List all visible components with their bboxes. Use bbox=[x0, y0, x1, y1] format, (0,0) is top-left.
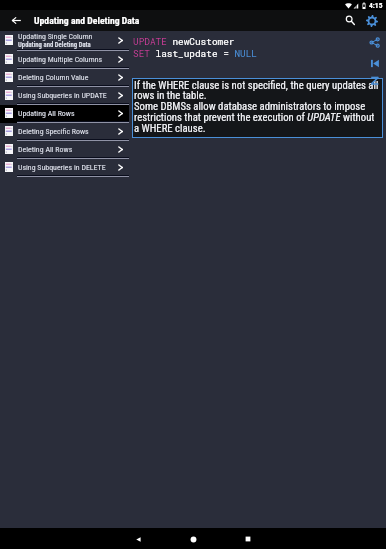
button[interactable]: Using Subqueries in UPDATE bbox=[0, 87, 129, 105]
staticText: If the WHERE clause is not specified, th… bbox=[134, 79, 382, 135]
button[interactable]: Previous bbox=[367, 56, 381, 70]
staticText: 4:15 bbox=[369, 1, 383, 10]
button[interactable]: Home bbox=[183, 529, 203, 549]
staticText: Updating All Rows bbox=[18, 109, 75, 118]
button[interactable]: Deleting All Rows bbox=[0, 141, 129, 159]
button[interactable]: Back bbox=[6, 10, 27, 31]
staticText: Deleting Specific Rows bbox=[18, 127, 89, 136]
button[interactable]: Back bbox=[128, 529, 148, 549]
button[interactable]: Settings bbox=[361, 10, 383, 31]
button[interactable]: Updating Multiple Columns bbox=[0, 51, 129, 69]
staticText: Updating Single Column bbox=[18, 32, 93, 41]
button[interactable]: Search bbox=[339, 10, 361, 31]
button[interactable]: Recents bbox=[238, 529, 258, 549]
staticText: Updating Multiple Columns bbox=[18, 55, 103, 64]
staticText: Deleting All Rows bbox=[18, 145, 73, 154]
button[interactable]: Using Subqueries in DELETE bbox=[0, 159, 129, 177]
button[interactable]: Updating All Rows bbox=[0, 105, 129, 123]
button[interactable]: Deleting Specific Rows bbox=[0, 123, 129, 141]
button[interactable]: Updating Single Column bbox=[0, 31, 129, 51]
staticText: UPDATE newCustomer bbox=[133, 35, 235, 47]
button[interactable]: Deleting Column Value bbox=[0, 69, 129, 87]
staticText: Updating and Deleting Data bbox=[18, 41, 91, 49]
button[interactable]: Share bbox=[367, 35, 381, 49]
staticText: Using Subqueries in UPDATE bbox=[18, 91, 107, 100]
staticText: Using Subqueries in DELETE bbox=[18, 163, 106, 172]
button[interactable]: Sort bbox=[367, 73, 381, 87]
staticText: SET last_update = NULL bbox=[133, 47, 257, 59]
staticText: Updating and Deleting Data bbox=[34, 15, 140, 26]
staticText: Deleting Column Value bbox=[18, 73, 89, 82]
